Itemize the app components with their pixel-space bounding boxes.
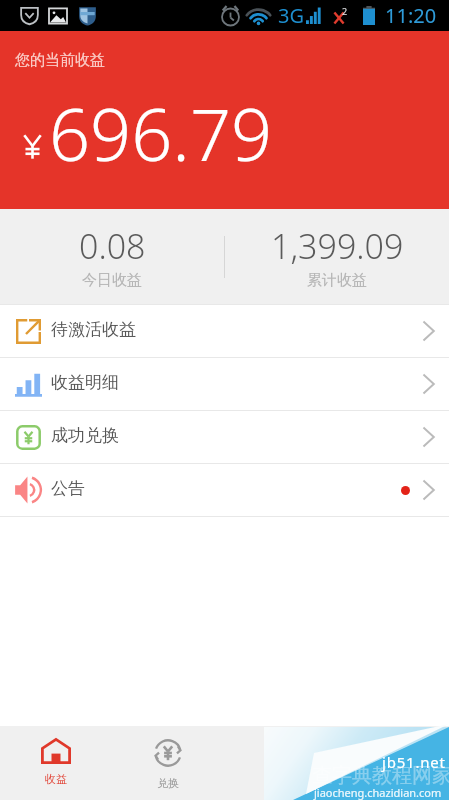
staticText: 兑换	[157, 776, 179, 790]
button[interactable]: 成功兑换	[0, 411, 449, 463]
staticText: 今日收益	[82, 271, 142, 290]
button[interactable]: 收益明细	[0, 358, 449, 410]
staticText: 1,399.09	[271, 223, 404, 269]
staticText: 查字典教程网家	[312, 763, 449, 788]
button[interactable]: 公告	[0, 464, 449, 516]
staticText: 3G	[278, 2, 304, 29]
staticText: jb51.net	[382, 752, 446, 772]
staticText: 待激活收益	[51, 319, 136, 340]
button[interactable]: 收益	[0, 726, 112, 800]
staticText: 696.79	[49, 84, 273, 182]
staticText: 11:20	[385, 2, 437, 29]
staticText: 您的当前收益	[15, 51, 105, 70]
staticText: jiaocheng.chazidian.com	[314, 785, 442, 800]
staticText: 2	[342, 5, 348, 17]
staticText: 收益	[45, 772, 67, 786]
staticText: 公告	[51, 478, 85, 499]
button[interactable]: 待激活收益	[0, 305, 449, 357]
staticText: 累计收益	[307, 271, 367, 290]
button[interactable]: 兑换	[112, 726, 224, 800]
staticText: 成功兑换	[51, 425, 119, 446]
staticText: 收益明细	[51, 372, 119, 393]
staticText: 0.08	[79, 223, 146, 269]
